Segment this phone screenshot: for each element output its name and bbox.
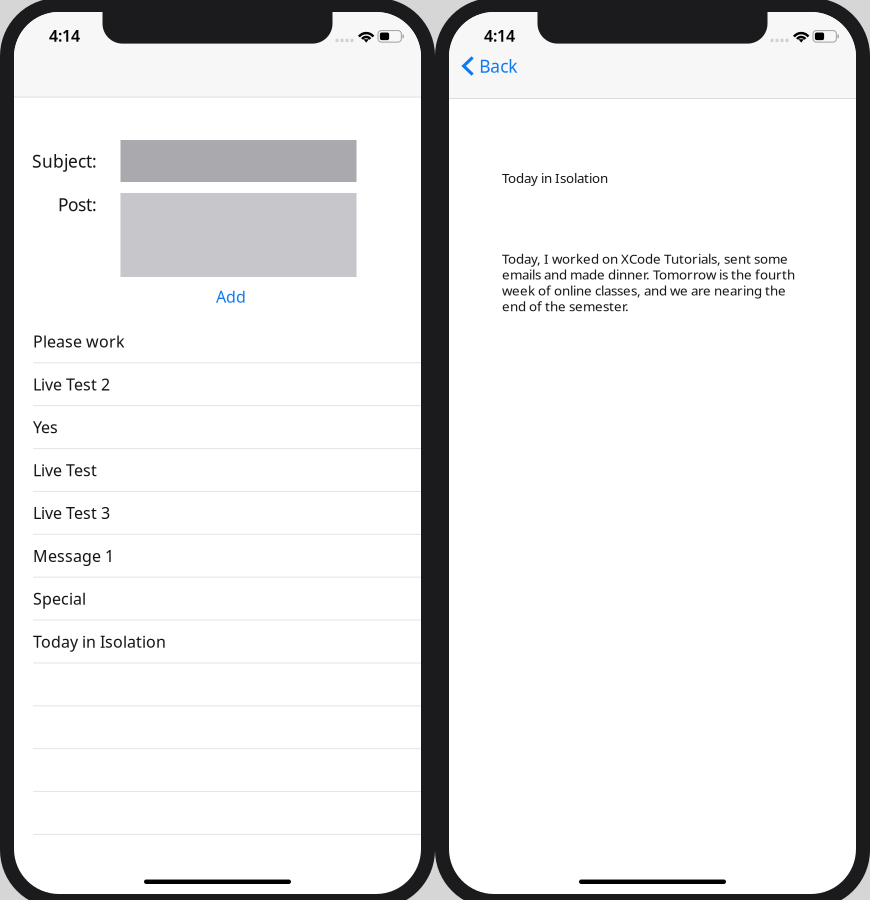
button[interactable]: Live Test 3 (14, 492, 421, 535)
staticText: Yes (33, 416, 58, 438)
button[interactable]: Special (14, 578, 421, 621)
staticText: week of online classes, and we are neari… (502, 281, 786, 299)
staticText: 4:14 (49, 25, 80, 46)
staticText: end of the semester. (502, 297, 629, 315)
button[interactable]: Live Test 2 (14, 363, 421, 406)
staticText: Today in Isolation (502, 169, 608, 187)
button[interactable]: Add (14, 277, 421, 320)
button[interactable]: Yes (14, 406, 421, 449)
button[interactable]: Please work (14, 320, 421, 363)
staticText: 4:14 (484, 25, 515, 46)
staticText: Live Test 2 (33, 374, 110, 395)
staticText: Message 1 (33, 545, 114, 566)
staticText: Special (33, 588, 86, 609)
staticText: Add (216, 286, 246, 307)
button[interactable]: Back (449, 47, 856, 85)
staticText: Back (479, 54, 517, 77)
staticText: Subject: (32, 149, 97, 172)
staticText: Today, I worked on XCode Tutorials, sent… (502, 250, 788, 267)
staticText: Post: (58, 193, 97, 216)
staticText: Today in Isolation (33, 631, 166, 652)
staticText: Please work (33, 331, 125, 352)
staticText: Live Test 3 (33, 502, 110, 523)
button[interactable]: Message 1 (14, 535, 421, 578)
button[interactable]: Today in Isolation (14, 621, 421, 663)
staticText: Live Test (33, 459, 97, 481)
button[interactable]: Live Test (14, 449, 421, 492)
staticText: emails and made dinner. Tomorrow is the … (502, 266, 795, 283)
